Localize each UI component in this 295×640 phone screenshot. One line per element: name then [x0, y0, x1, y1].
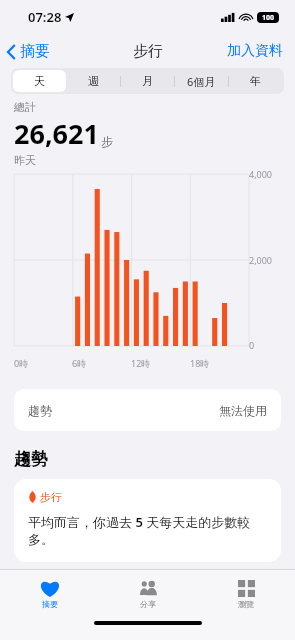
staticText: 月: [142, 74, 153, 88]
staticText: 天: [34, 74, 45, 88]
button[interactable]: 年: [228, 70, 282, 92]
button[interactable]: 天: [13, 70, 66, 92]
staticText: 6時: [72, 357, 87, 369]
staticText: 步行: [40, 490, 62, 504]
button[interactable]: 加入資料: [215, 38, 295, 64]
staticText: 07:28: [28, 8, 62, 26]
staticText: 加入資料: [227, 42, 283, 60]
staticText: 12時: [131, 357, 151, 369]
staticText: 摘要: [20, 42, 50, 61]
staticText: 步行: [133, 42, 163, 61]
button[interactable]: 月: [120, 70, 174, 92]
button[interactable]: 瀏覽: [197, 570, 295, 618]
button[interactable]: 步行: [14, 479, 281, 562]
staticText: 分享: [140, 599, 156, 609]
staticText: 摘要: [42, 599, 58, 609]
button[interactable]: 6個月: [174, 70, 228, 92]
staticText: 26,621: [14, 115, 99, 152]
staticText: 趨勢: [28, 403, 52, 418]
button[interactable]: 摘要: [0, 38, 58, 65]
staticText: 0: [249, 339, 255, 351]
staticText: 0時: [14, 357, 29, 369]
staticText: 平均而言，你過去 5 天每天走的步數較多。: [28, 513, 267, 548]
staticText: 年: [250, 74, 261, 88]
staticText: 週: [88, 74, 99, 88]
staticText: 100: [262, 13, 275, 23]
button[interactable]: 分享: [99, 570, 197, 618]
staticText: 6個月: [187, 74, 216, 89]
staticText: 總計: [14, 100, 36, 114]
staticText: 4,000: [249, 168, 273, 180]
staticText: 步: [101, 134, 113, 149]
staticText: 18時: [190, 357, 210, 369]
staticText: 瀏覽: [238, 599, 254, 609]
button[interactable]: 摘要: [0, 570, 99, 618]
staticText: 昨天: [14, 153, 36, 167]
button[interactable]: 趨勢: [14, 389, 281, 431]
staticText: 2,000: [249, 254, 273, 266]
staticText: 趨勢: [14, 449, 48, 470]
staticText: 無法使用: [219, 403, 267, 418]
button[interactable]: 週: [66, 70, 120, 92]
